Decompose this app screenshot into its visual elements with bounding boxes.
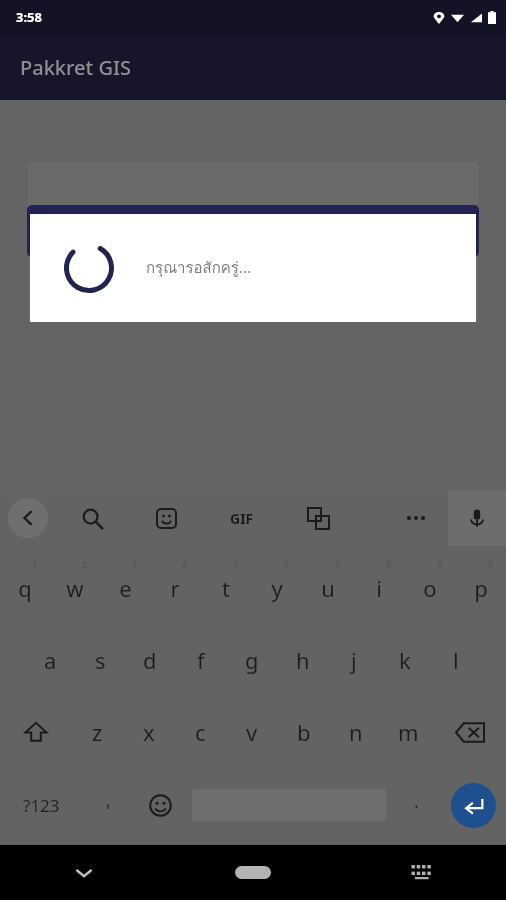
button[interactable]: b <box>278 696 330 768</box>
button[interactable]: a <box>25 624 75 696</box>
button[interactable]: m <box>382 696 434 768</box>
button[interactable]: e <box>100 552 150 624</box>
button[interactable] <box>27 205 479 257</box>
staticText: w <box>66 573 84 603</box>
button[interactable]: s <box>75 624 125 696</box>
staticText: o <box>423 573 437 603</box>
staticText: e <box>119 573 132 603</box>
button[interactable]: Search <box>56 490 128 546</box>
staticText: ?123 <box>23 794 60 817</box>
staticText: a <box>44 645 57 675</box>
staticText: Pakkret GIS <box>20 54 132 81</box>
button[interactable]: c <box>174 696 226 768</box>
button[interactable]: Backspace <box>434 696 506 768</box>
button[interactable]: j <box>328 624 379 696</box>
staticText: b <box>297 717 311 747</box>
button[interactable] <box>55 258 451 281</box>
button[interactable]: Enter <box>451 783 496 828</box>
staticText: 0 <box>488 558 494 570</box>
staticText: j <box>351 645 357 675</box>
staticText: 7 <box>335 558 341 570</box>
button[interactable]: GIF <box>204 490 280 546</box>
button[interactable]: t <box>200 552 251 624</box>
button[interactable]: y <box>251 552 302 624</box>
button[interactable]: v <box>226 696 278 768</box>
staticText: 2 <box>82 558 88 570</box>
button[interactable]: w <box>50 552 100 624</box>
staticText: i <box>376 573 382 603</box>
staticText: . <box>414 789 419 814</box>
staticText: l <box>453 645 459 675</box>
button[interactable]: f <box>175 624 226 696</box>
button[interactable]: Back <box>0 490 56 546</box>
button[interactable]: ?123 <box>0 768 82 842</box>
staticText: s <box>95 645 106 675</box>
button[interactable]: Home <box>168 845 337 900</box>
staticText: n <box>349 717 363 747</box>
button[interactable]: Switch keyboard <box>337 845 506 900</box>
staticText: y <box>271 573 283 603</box>
staticText: กรุณารอสักครู่... <box>146 256 251 280</box>
button[interactable]: n <box>330 696 382 768</box>
button[interactable]: o <box>404 552 455 624</box>
staticText: d <box>143 645 157 675</box>
staticText: GIF <box>230 509 254 528</box>
button[interactable]: k <box>379 624 430 696</box>
staticText: v <box>246 717 258 747</box>
staticText: t <box>222 573 230 603</box>
button[interactable]: u <box>302 552 353 624</box>
button[interactable]: r <box>150 552 200 624</box>
staticText: 9 <box>437 558 443 570</box>
button[interactable]: Stickers <box>128 490 204 546</box>
button[interactable]: h <box>277 624 328 696</box>
staticText: 3:58 <box>16 8 42 26</box>
staticText: , <box>106 788 111 813</box>
button[interactable]: l <box>430 624 481 696</box>
staticText: u <box>321 573 335 603</box>
staticText: x <box>143 717 155 747</box>
staticText: 4 <box>182 558 188 570</box>
staticText: c <box>195 717 206 747</box>
staticText: f <box>197 645 205 675</box>
staticText: z <box>92 717 103 747</box>
staticText: m <box>398 717 419 747</box>
button[interactable]: d <box>125 624 175 696</box>
button[interactable]: user31 <box>55 200 451 230</box>
staticText: 5 <box>233 558 239 570</box>
button[interactable]: p <box>455 552 506 624</box>
button[interactable]: Emoji <box>134 768 186 842</box>
button[interactable]: g <box>226 624 277 696</box>
staticText: 3 <box>132 558 138 570</box>
staticText: k <box>399 645 411 675</box>
button[interactable]: q <box>0 552 50 624</box>
staticText: p <box>474 573 488 603</box>
button[interactable]: i <box>353 552 404 624</box>
button[interactable]: More options <box>384 490 448 546</box>
button[interactable]: Translate <box>280 490 356 546</box>
button[interactable]: Voice input <box>448 490 506 546</box>
staticText: 6 <box>284 558 290 570</box>
staticText: r <box>170 573 180 603</box>
staticText: 8 <box>386 558 392 570</box>
staticText: user31 <box>55 200 110 223</box>
button[interactable]: x <box>123 696 174 768</box>
staticText: q <box>18 573 32 603</box>
staticText: h <box>296 645 310 675</box>
button[interactable]: Shift <box>0 696 72 768</box>
button[interactable]: Hide keyboard <box>0 845 168 900</box>
staticText: g <box>245 645 259 675</box>
button[interactable]: z <box>72 696 123 768</box>
staticText: 1 <box>32 558 38 570</box>
